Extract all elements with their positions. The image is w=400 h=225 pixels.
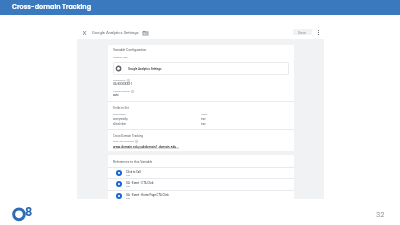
staticText: Cross-domain Tracking [12,2,92,11]
staticText: Google Analytics Settings [128,67,162,70]
staticText: Field Name [113,113,126,116]
staticText: References to this Variable [113,160,153,164]
button[interactable]: GA - Event - CTA Click [108,178,294,190]
staticText: UA-XXXXXXX-1 [113,82,133,85]
staticText: GA - Event - CTA Click [126,181,154,184]
staticText: Fields to Set [113,106,129,109]
button[interactable]: Copy [142,30,148,36]
staticText: true [201,118,206,121]
button[interactable]: GA - Event - Home Page CTA Click [108,190,294,202]
staticText: GA - Event - Home Page CTA Click [126,193,169,196]
staticText: Auto Link Domains [113,140,134,143]
staticText: true [201,123,206,126]
staticText: auto [113,93,119,96]
button[interactable]: Save [293,29,312,35]
staticText: Tag [126,174,130,177]
staticText: 32 [376,209,385,219]
staticText: Tag [126,185,130,188]
staticText: allowLinker [113,123,127,126]
staticText: Variable Configuration [113,48,147,52]
other: O8 logo [10,203,34,224]
staticText: Save [298,30,307,34]
staticText: Google Analytics Settings [92,30,139,35]
button[interactable]: Google Analytics Settings [113,62,289,75]
staticText: Tag [126,197,130,200]
button[interactable]: Click to Call [108,167,294,179]
staticText: Value [201,113,208,116]
button[interactable]: More options [315,29,321,35]
staticText: 8 [25,204,33,220]
staticText: Tracking ID [113,79,126,82]
staticText: www.domain.edu,subdomain1.domain.edu... [113,145,289,149]
staticText: Cookie Domain [113,90,130,93]
staticText: anonymizeIp [113,118,128,121]
button[interactable]: Close [81,29,88,36]
staticText: Cross-Domain Tracking [113,134,143,137]
staticText: Click to Call [126,170,141,173]
staticText: Variable Type [113,56,128,59]
